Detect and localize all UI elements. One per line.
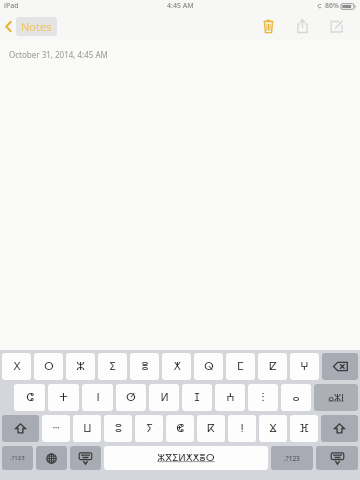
button[interactable]: ⴴ <box>259 415 287 442</box>
button[interactable]: ⵢ <box>135 415 163 442</box>
button[interactable]: ⵞ <box>166 415 194 442</box>
staticText: ⵈ <box>52 422 60 435</box>
button[interactable]: Shift <box>2 415 39 442</box>
staticText: ⴽ <box>207 422 215 435</box>
button[interactable]: ⵚ <box>116 384 146 411</box>
button[interactable]: ⵎ <box>226 353 255 380</box>
button[interactable]: Notes <box>5 17 57 36</box>
staticText: ⵊ <box>194 391 200 404</box>
button[interactable]: ⴼ <box>290 415 318 442</box>
button[interactable]: Delete note <box>254 12 282 40</box>
button[interactable]: Hide keyboard <box>70 446 101 470</box>
staticText: ⵢ <box>146 422 153 435</box>
button[interactable]: ⵜ <box>48 384 79 411</box>
staticText: ⵔ <box>44 360 54 373</box>
button[interactable]: ⵔ <box>34 353 63 380</box>
button[interactable]: ⴽ <box>197 415 225 442</box>
staticText: ⵄ <box>226 391 235 404</box>
staticText: 86% <box>325 1 339 11</box>
button[interactable]: ⵕ <box>194 353 223 380</box>
staticText: .?123 <box>10 454 25 462</box>
button[interactable]: Numbers and symbols <box>2 446 33 470</box>
button[interactable]: ⴰ <box>281 384 311 411</box>
staticText: iPad <box>4 1 19 11</box>
staticText: Notes <box>21 19 52 34</box>
staticText: ⵜ <box>59 391 68 404</box>
staticText: October 31, 2014, 4:45 AM <box>9 49 108 60</box>
staticText: ⵉ <box>109 360 116 373</box>
button[interactable]: Hide keyboard <box>316 446 358 470</box>
staticText: ⵛ <box>26 391 34 404</box>
button[interactable]: ⵇ <box>258 353 287 380</box>
button[interactable]: Shift <box>321 415 358 442</box>
button[interactable]: ⵍ <box>149 384 179 411</box>
staticText: ⴻ <box>141 360 149 373</box>
staticText: ⴰⵣⵏ <box>328 393 344 403</box>
staticText: ⵓ <box>115 422 122 435</box>
button[interactable]: Numbers and symbols <box>271 446 313 470</box>
staticText: ⵇ <box>269 360 277 373</box>
button[interactable]: Share <box>288 12 316 40</box>
button[interactable]: ⴰⵣⵏ <box>314 384 358 411</box>
button[interactable]: ⵝ <box>2 353 31 380</box>
button[interactable]: ⴻ <box>130 353 159 380</box>
button[interactable]: ⵣⴳⵉⵍⵅⵅⴻⵔ <box>104 446 268 470</box>
staticText: ⵞ <box>176 422 184 435</box>
button[interactable]: ⵛ <box>14 384 45 411</box>
button[interactable]: ⵄ <box>215 384 245 411</box>
staticText: ⵎ <box>237 360 244 373</box>
button[interactable]: ⵏ <box>82 384 113 411</box>
button[interactable]: ⵉ <box>98 353 127 380</box>
staticText: ⵑ <box>240 422 244 435</box>
button[interactable]: Backspace <box>322 353 358 380</box>
button[interactable]: ⵣ <box>66 353 95 380</box>
button[interactable]: ⵅ <box>162 353 191 380</box>
button[interactable]: Change keyboard language <box>36 446 67 470</box>
staticText: ⵚ <box>126 391 136 404</box>
button[interactable]: ⵗ <box>248 384 278 411</box>
staticText: ⵖ <box>300 360 309 373</box>
button[interactable]: ⵊ <box>182 384 212 411</box>
button[interactable]: ⵈ <box>42 415 70 442</box>
staticText: ⵡ <box>83 422 92 435</box>
staticText: ⵝ <box>13 360 21 373</box>
staticText: 4:45 AM <box>167 1 194 11</box>
staticText: ⵍ <box>160 391 169 404</box>
staticText: ⵣⴳⵉⵍⵅⵅⴻⵔ <box>157 452 215 464</box>
button[interactable]: ⵡ <box>73 415 101 442</box>
staticText: ⴼ <box>299 422 309 435</box>
button[interactable]: Compose new note <box>322 12 350 40</box>
button[interactable]: ⵓ <box>104 415 132 442</box>
staticText: ⴴ <box>269 422 277 435</box>
staticText: ⴰ <box>292 391 300 404</box>
staticText: ⵕ <box>204 360 214 373</box>
button[interactable]: ⵖ <box>290 353 319 380</box>
staticText: ⵏ <box>96 391 100 404</box>
staticText: ⵣ <box>76 360 85 373</box>
staticText: .?123 <box>284 454 300 463</box>
staticText: ⵅ <box>173 360 181 373</box>
staticText: ⵗ <box>261 391 265 404</box>
button[interactable]: ⵑ <box>228 415 256 442</box>
